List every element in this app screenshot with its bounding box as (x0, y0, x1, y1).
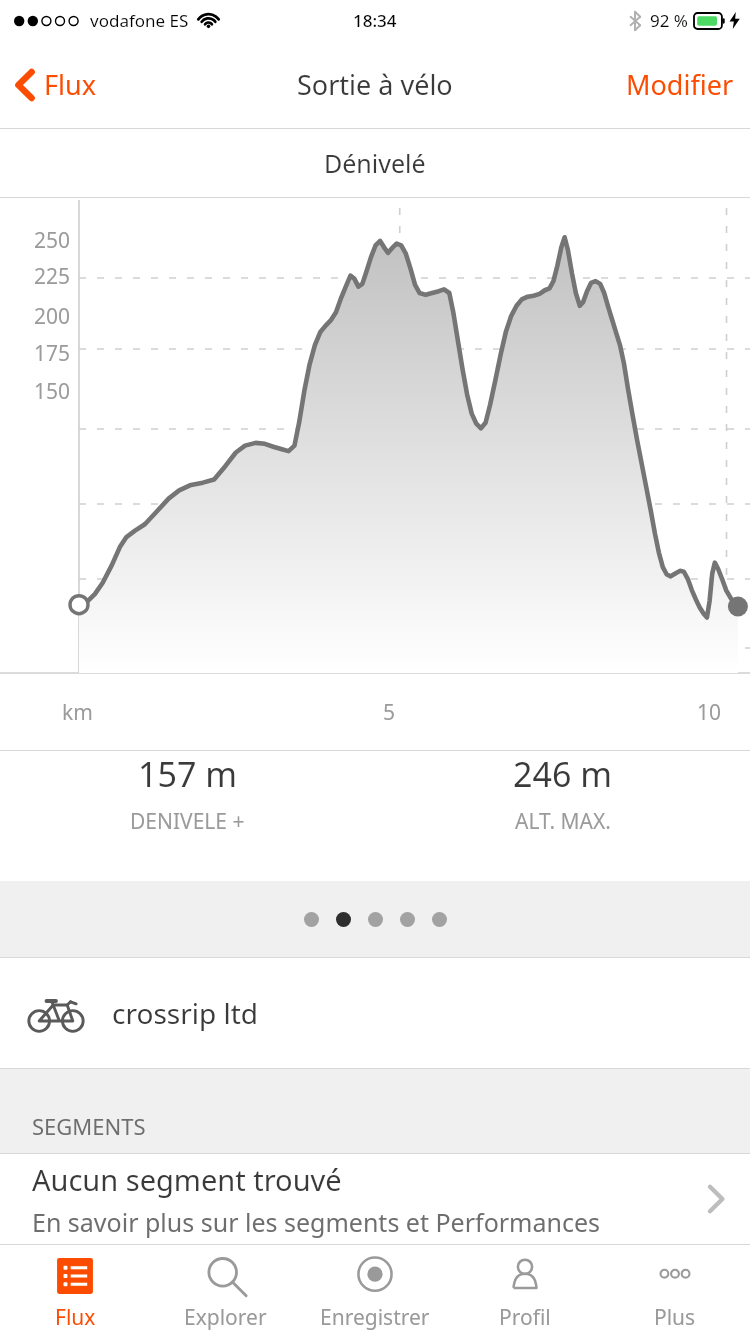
button[interactable]: Modifier (610, 54, 750, 115)
staticText: En savoir plus sur les segments et Perfo… (32, 1205, 601, 1239)
staticText: Explorer (184, 1303, 267, 1332)
staticText: 246 m (513, 751, 612, 797)
staticText: Plus (654, 1303, 696, 1332)
staticText: Modifier (626, 66, 734, 103)
staticText: crossrip ltd (112, 994, 259, 1032)
staticText: Aucun segment trouvé (32, 1160, 342, 1199)
button[interactable]: Plus (600, 1247, 750, 1332)
staticText: 150 (20, 377, 70, 406)
staticText: 18:34 (353, 9, 397, 32)
button[interactable]: Flux (0, 1247, 150, 1332)
staticText: 92 % (650, 9, 688, 32)
staticText: 5 (383, 698, 396, 727)
staticText: km (62, 698, 93, 727)
staticText: DENIVELE + (130, 807, 245, 836)
staticText: 10 (697, 698, 722, 727)
button[interactable]: Flux (0, 56, 108, 113)
staticText: Sortie à vélo (297, 66, 453, 103)
button[interactable]: Aucun segment trouvé (0, 1154, 750, 1244)
button[interactable]: 157 m (0, 751, 375, 836)
button[interactable]: 246 m (375, 751, 750, 836)
staticText: 157 m (138, 751, 237, 797)
staticText: Flux (55, 1303, 96, 1332)
staticText: 225 (20, 262, 70, 291)
staticText: Dénivelé (324, 146, 426, 180)
button[interactable]: Explorer (150, 1247, 300, 1332)
staticText: ALT. MAX. (515, 807, 611, 836)
button[interactable]: Enregistrer (300, 1247, 450, 1332)
button[interactable]: Profil (450, 1247, 600, 1332)
button[interactable]: crossrip ltd (0, 958, 750, 1068)
staticText: 250 (20, 226, 70, 255)
staticText: Profil (499, 1303, 551, 1332)
staticText: SEGMENTS (32, 1111, 146, 1141)
staticText: Flux (44, 66, 96, 103)
staticText: vodafone ES (90, 9, 189, 32)
staticText: Enregistrer (320, 1303, 430, 1332)
staticText: 200 (20, 302, 70, 331)
staticText: 175 (20, 339, 70, 368)
